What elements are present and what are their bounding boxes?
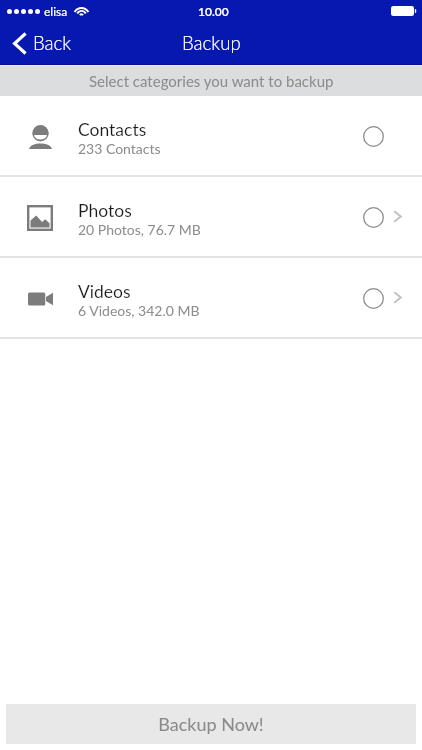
staticText: 233 Contacts — [78, 140, 161, 157]
button[interactable]: Backup Now! — [6, 704, 416, 744]
staticText: Backup Now! — [158, 713, 264, 735]
staticText: Videos — [78, 281, 131, 302]
button[interactable]: Select Contacts — [353, 116, 393, 156]
staticText: 20 Photos, 76.7 MB — [78, 221, 201, 238]
staticText: Contacts — [78, 119, 147, 140]
staticText: Backup — [182, 32, 241, 54]
staticText: 6 Videos, 342.0 MB — [78, 302, 200, 319]
staticText: Back — [33, 32, 72, 54]
button[interactable]: Photos — [0, 177, 422, 256]
staticText: elisa — [44, 4, 68, 18]
staticText: Select categories you want to backup — [89, 72, 334, 90]
button[interactable]: Contacts — [0, 96, 422, 175]
staticText: Photos — [78, 200, 132, 221]
button[interactable]: Select Photos — [353, 197, 393, 237]
button[interactable]: Back — [0, 28, 86, 58]
button[interactable]: Videos — [0, 258, 422, 337]
staticText: 10.00 — [198, 4, 229, 18]
button[interactable]: Select Videos — [353, 278, 393, 318]
